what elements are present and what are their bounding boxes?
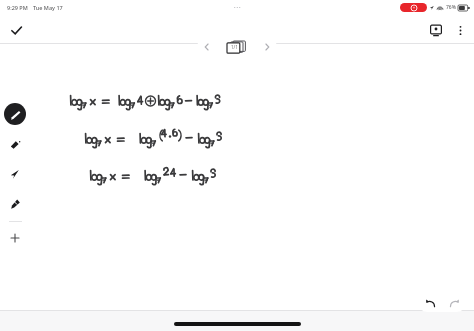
button[interactable]: Pen (4, 103, 26, 125)
button[interactable]: Previous page (197, 37, 217, 57)
button[interactable]: Done (3, 17, 29, 43)
button[interactable]: Select (5, 164, 25, 184)
staticText: Tue May 17 (33, 4, 63, 11)
button[interactable]: Highlighter (5, 194, 25, 214)
button[interactable]: Present (423, 17, 449, 43)
button[interactable]: Undo (419, 294, 441, 312)
staticText: 1/1 (231, 44, 238, 50)
button[interactable]: Add tool (5, 228, 25, 248)
staticText: 9:29 PM (7, 4, 28, 11)
button[interactable]: Eraser (5, 134, 25, 154)
button[interactable]: Redo (443, 294, 465, 312)
staticText: • • • (234, 5, 241, 10)
staticText: 76% (446, 4, 456, 11)
button[interactable]: More options (449, 19, 471, 41)
button[interactable]: Pages (224, 37, 250, 57)
button[interactable]: Next page (257, 37, 277, 57)
